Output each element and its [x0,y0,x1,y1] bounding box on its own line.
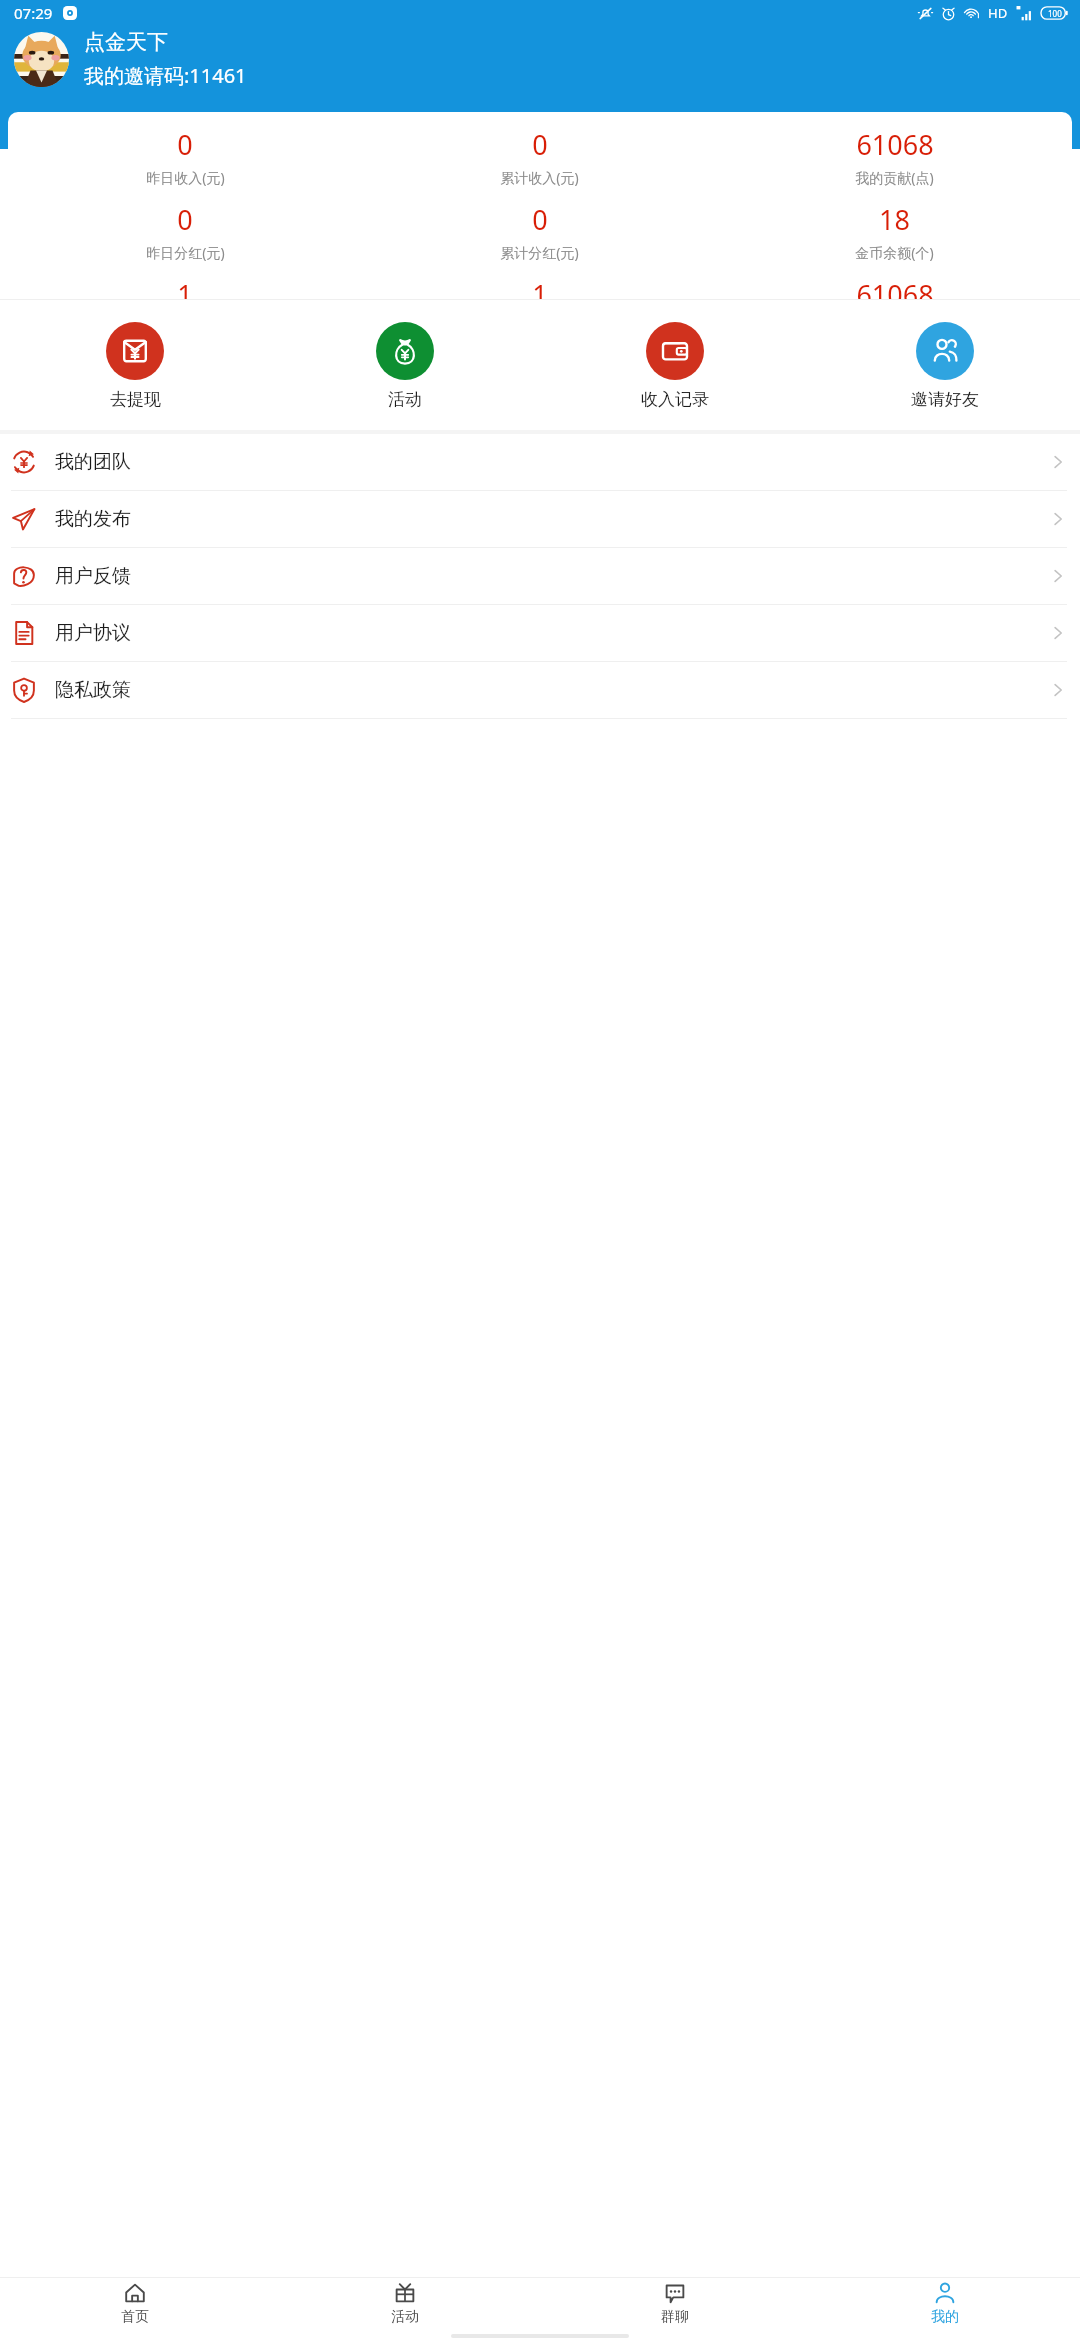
staticText: 累计分红(元) [500,243,579,262]
staticText: 活动 [391,2308,419,2326]
button[interactable]: 活动 [270,322,540,410]
staticText: 用户反馈 [55,564,131,588]
button[interactable]: 收入记录 [540,322,810,410]
staticText: 100 [1048,8,1062,19]
button[interactable]: 我的团队 [0,434,1080,490]
staticText: 我的 [931,2308,959,2326]
button[interactable]: 点金天下 [14,29,247,89]
staticText: 1 [177,276,193,299]
button[interactable]: 用户协议 [0,605,1080,661]
button[interactable]: 隐私政策 [0,662,1080,718]
staticText: 我的发布 [55,507,131,531]
staticText: 0 [532,201,548,238]
button[interactable]: 我的 [810,2278,1080,2329]
button[interactable]: 0 [8,126,362,187]
staticText: 0 [177,201,193,238]
staticText: 去提现 [110,389,161,410]
staticText: 昨日收入(元) [146,168,225,187]
button[interactable]: 去提现 [0,322,270,410]
button[interactable]: 群聊 [540,2278,810,2329]
staticText: 首页 [121,2308,149,2326]
staticText: 1 [532,276,548,299]
button[interactable]: 61068 [717,276,1072,299]
staticText: 邀请好友 [911,389,979,410]
staticText: 18 [879,201,910,238]
button[interactable]: 用户反馈 [0,548,1080,604]
button[interactable]: 61068 [717,126,1072,187]
staticText: 隐私政策 [55,678,131,702]
button[interactable]: 0 [8,201,362,262]
staticText: HD [988,4,1008,22]
staticText: 61068 [856,276,934,299]
staticText: 点金天下 [84,29,168,55]
button[interactable]: 0 [362,126,717,187]
staticText: 我的贡献(点) [855,168,934,187]
staticText: 收入记录 [641,389,709,410]
button[interactable]: 活动 [270,2278,540,2329]
staticText: 用户协议 [55,621,131,645]
staticText: 0 [177,126,193,163]
staticText: 金币余额(个) [855,243,934,262]
button[interactable]: 0 [362,201,717,262]
button[interactable]: 邀请好友 [810,322,1080,410]
button[interactable]: 首页 [0,2278,270,2329]
staticText: 昨日分红(元) [146,243,225,262]
button[interactable]: 1 [8,276,362,299]
button[interactable]: 1 [362,276,717,299]
staticText: 我的团队 [55,450,131,474]
staticText: 群聊 [661,2308,689,2326]
staticText: 活动 [388,389,422,410]
staticText: 我的邀请码:11461 [84,62,247,89]
staticText: 61068 [856,126,934,163]
staticText: 0 [532,126,548,163]
staticText: 07:29 [14,3,53,23]
staticText: 累计收入(元) [500,168,579,187]
button[interactable]: 我的发布 [0,491,1080,547]
button[interactable]: 18 [717,201,1072,262]
